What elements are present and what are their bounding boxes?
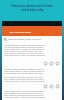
staticText: dolore magna aliqua. Ut enim ad minim ve… — [4, 90, 45, 92]
staticText: elit sed do eiusmod tempor incididunt ut… — [4, 46, 44, 48]
staticText: dolore magna aliqua. Ut enim ad minim ve… — [4, 70, 45, 72]
staticText: Lorem ipsum dolor sit amet, consectetur … — [4, 44, 45, 46]
staticText: Lorem ipsum dolor sit amet, consectetur … — [4, 54, 45, 56]
button[interactable]: Share — [55, 84, 60, 89]
button[interactable]: Like — [43, 84, 48, 89]
staticText: Search for people, pages and more — [8, 38, 41, 41]
staticText: dolore magna aliqua. Ut enim ad minim ve… — [4, 48, 45, 50]
button[interactable]: GET STARTED FREE — [2, 26, 62, 36]
button[interactable]: Search for people, pages and more — [2, 36, 62, 43]
staticText: Lorem ipsum dolor sit amet, consectetur … — [4, 80, 45, 82]
staticText: GET STARTED FREE — [9, 30, 31, 33]
staticText: ex ea commodo consequat duis aute irure … — [4, 78, 44, 80]
staticText: nostrud exercitation ullamco laboris nis… — [4, 92, 43, 94]
button[interactable]: Comment — [49, 84, 54, 89]
staticText: nostrud exercitation ullamco laboris nis… — [4, 50, 43, 52]
staticText: ex ea commodo consequat duis aute irure … — [4, 94, 44, 96]
staticText: Share your photos with friends — [11, 4, 53, 8]
button[interactable]: Like — [43, 61, 48, 66]
staticText: and family today — [21, 8, 44, 12]
staticText: Lorem ipsum dolor sit amet, consectetur … — [4, 96, 45, 98]
button[interactable]: Share — [55, 61, 60, 66]
staticText: nostrud exercitation ullamco laboris nis… — [4, 76, 43, 78]
staticText: elit sed do eiusmod tempor incididunt ut… — [4, 68, 44, 70]
staticText: nostrud exercitation ullamco laboris nis… — [4, 72, 43, 74]
button[interactable]: Comment — [49, 61, 54, 66]
staticText: ex ea commodo consequat duis aute irure … — [4, 52, 44, 54]
